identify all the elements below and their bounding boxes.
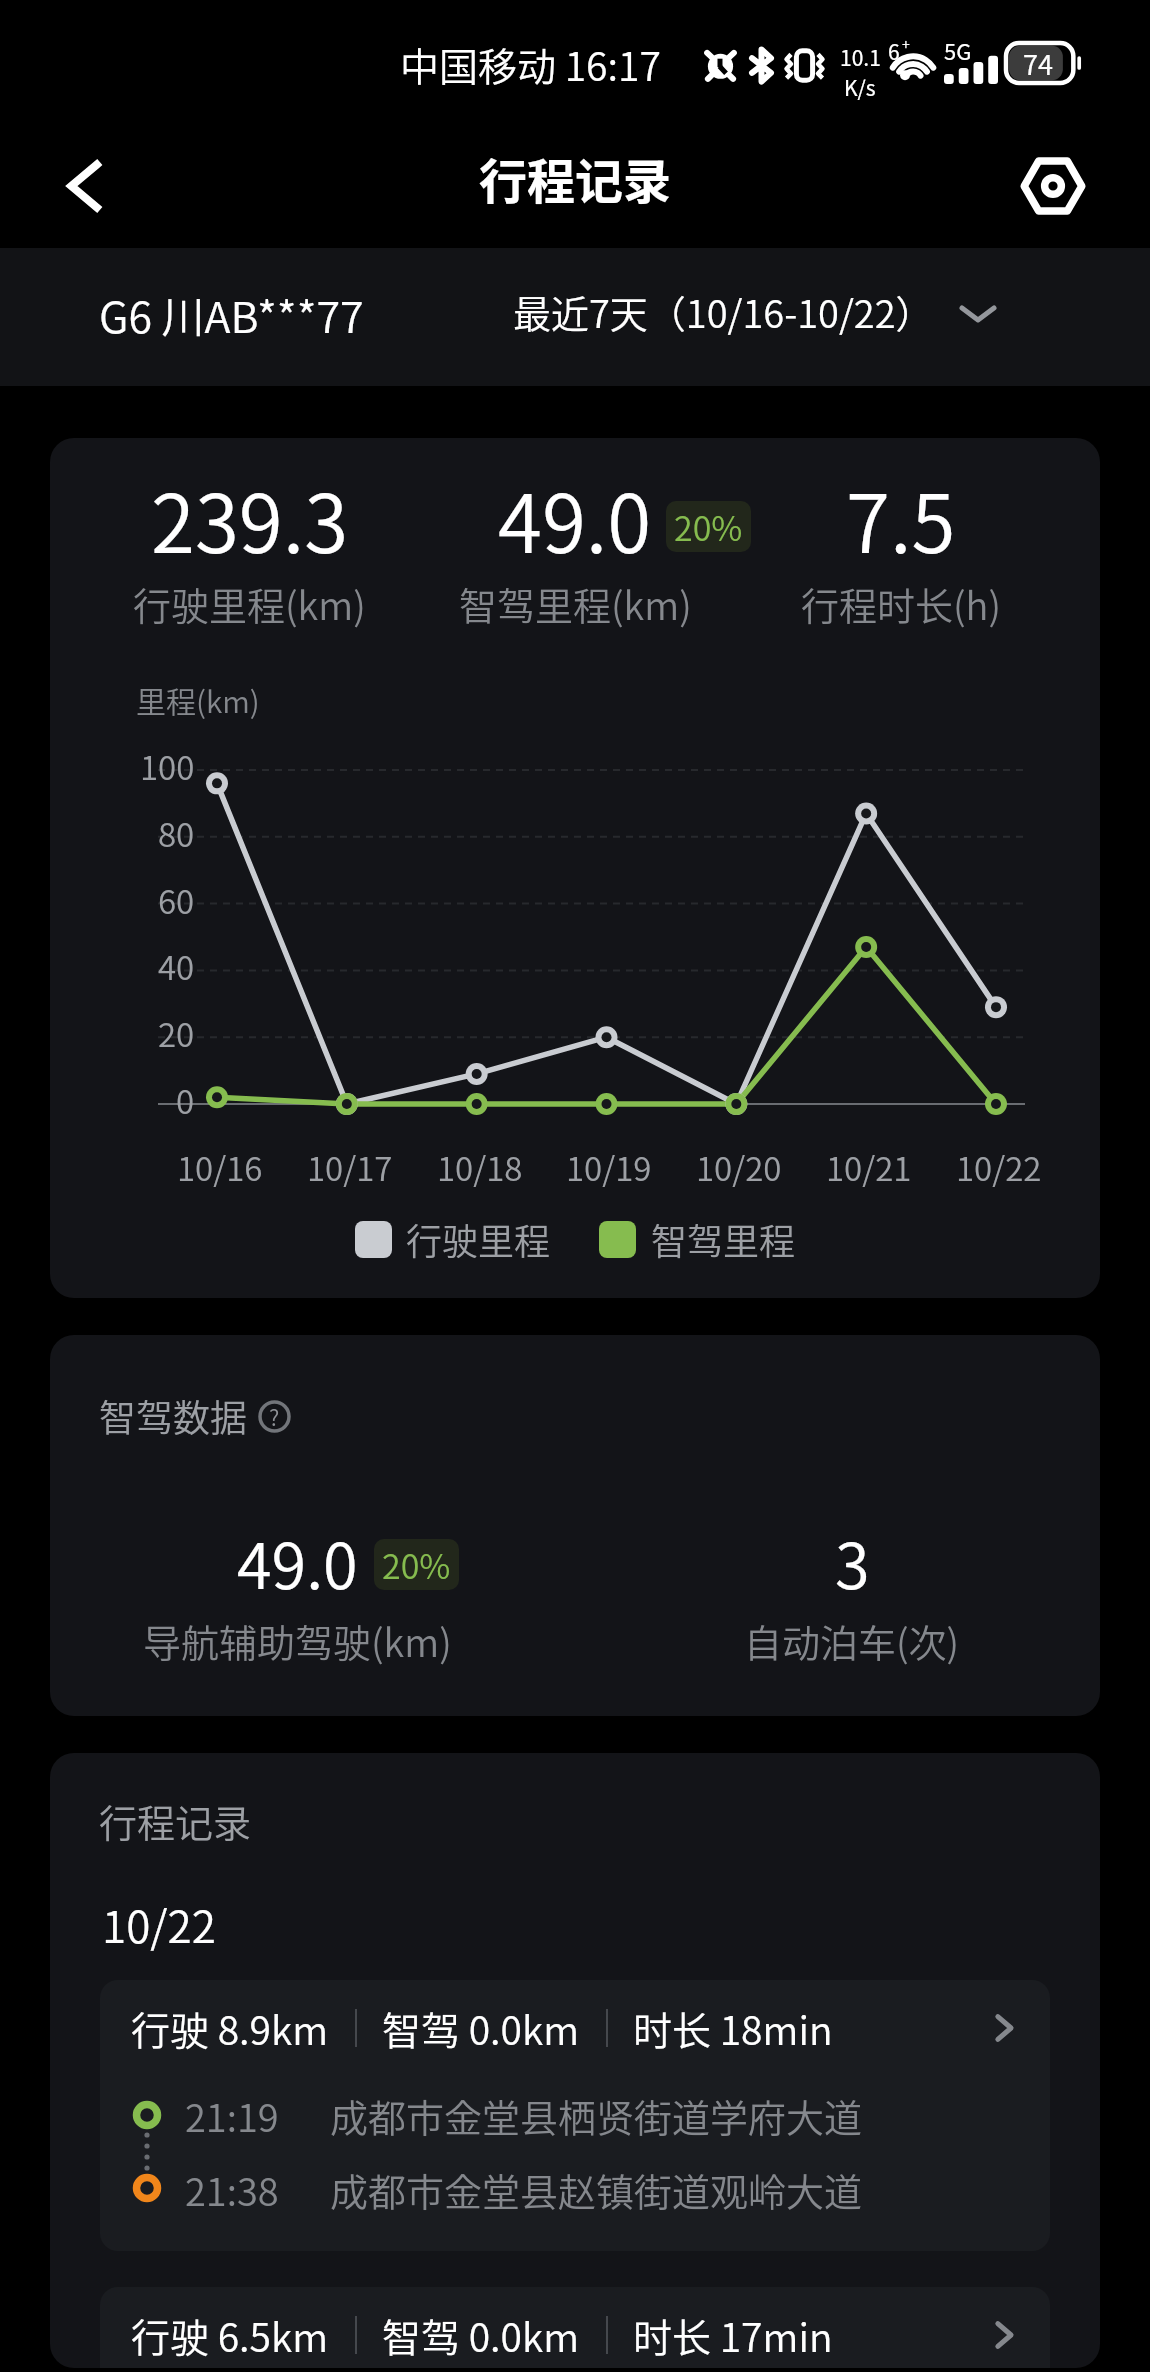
staticText: 成都市金堂县赵镇街道观岭大道 <box>330 2162 863 2217</box>
staticText: + <box>902 34 910 54</box>
button[interactable]: 最近7天（10/16-10/22） <box>513 284 996 339</box>
staticText: 5G <box>944 34 972 66</box>
staticText: 智驾里程(km) <box>459 576 692 631</box>
staticText: 成都市金堂县栖贤街道学府大道 <box>330 2088 863 2143</box>
staticText: 最近7天（10/16-10/22） <box>513 284 934 339</box>
staticText: 智驾数据 <box>99 1389 247 1443</box>
button[interactable]: 行驶 8.9km <box>100 1980 1050 2251</box>
staticText: 行驶 6.5km <box>131 2307 329 2363</box>
staticText: 7.5 <box>846 460 956 576</box>
staticText: 自动泊车(次) <box>744 1613 960 1668</box>
staticText: 导航辅助驾驶(km) <box>143 1613 452 1668</box>
staticText: 49.0 <box>237 1516 358 1607</box>
staticText: 60 <box>158 876 195 924</box>
staticText: 行驶里程(km) <box>133 576 366 631</box>
staticText: 100 <box>140 742 195 790</box>
staticText: 行程时长(h) <box>801 576 1002 631</box>
button[interactable]: Back <box>54 155 116 217</box>
staticText: 10/22 <box>956 1143 1042 1191</box>
staticText: 74 <box>1023 44 1053 83</box>
staticText: ? <box>269 1400 280 1432</box>
staticText: 10/18 <box>437 1143 523 1191</box>
staticText: 智驾 0.0km <box>382 2000 580 2056</box>
staticText: 10/20 <box>696 1143 782 1191</box>
staticText: 20 <box>158 1009 195 1057</box>
button[interactable]: Settings <box>1021 154 1085 218</box>
staticText: G6 川AB***77 <box>99 283 364 345</box>
button[interactable]: 行驶 6.5km <box>100 2287 1050 2368</box>
button[interactable]: G6 川AB***77 <box>99 283 364 345</box>
staticText: 80 <box>158 809 195 857</box>
staticText: 智驾里程 <box>651 1213 796 1265</box>
staticText: 0 <box>176 1076 195 1124</box>
staticText: 20% <box>382 1540 451 1589</box>
staticText: 3 <box>835 1516 870 1607</box>
staticText: 里程(km) <box>136 678 260 721</box>
staticText: 10/16 <box>177 1143 263 1191</box>
staticText: 10/19 <box>566 1143 652 1191</box>
staticText: K/s <box>844 72 876 102</box>
staticText: 行程记录 <box>99 1793 252 1848</box>
staticText: 40 <box>158 942 195 990</box>
staticText: 239.3 <box>151 460 349 576</box>
staticText: 10/17 <box>307 1143 393 1191</box>
staticText: 21:19 <box>185 2088 279 2143</box>
staticText: 时长 18min <box>633 2000 833 2056</box>
staticText: 21:38 <box>185 2162 279 2217</box>
staticText: 20% <box>674 502 743 551</box>
staticText: 10/21 <box>826 1143 912 1191</box>
staticText: 时长 17min <box>633 2307 833 2363</box>
staticText: 10/22 <box>102 1892 216 1956</box>
staticText: 中国移动 16:17 <box>400 36 661 92</box>
staticText: 49.0 <box>498 460 652 576</box>
staticText: 智驾 0.0km <box>382 2307 580 2363</box>
staticText: 10.1 <box>840 42 881 72</box>
staticText: 6 <box>888 36 900 66</box>
staticText: 行程记录 <box>479 143 672 213</box>
staticText: 行驶 8.9km <box>131 2000 329 2056</box>
staticText: 行驶里程 <box>406 1213 551 1265</box>
